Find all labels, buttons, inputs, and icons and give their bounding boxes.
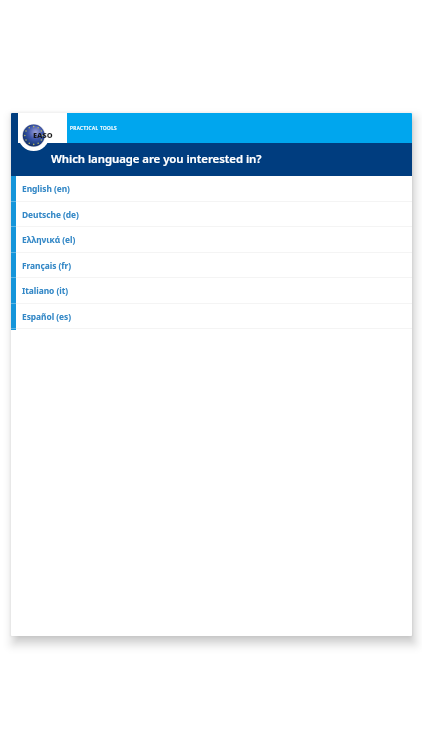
button[interactable]: Ελληνικά (el) bbox=[11, 227, 412, 253]
staticText: Español (es) bbox=[22, 311, 71, 322]
button[interactable]: English (en) bbox=[11, 176, 412, 202]
staticText: Italiano (it) bbox=[22, 285, 69, 296]
button[interactable]: Italiano (it) bbox=[11, 278, 412, 304]
staticText: Which language are you interested in? bbox=[51, 151, 262, 167]
staticText: EASO bbox=[33, 130, 53, 140]
button[interactable]: Français (fr) bbox=[11, 253, 412, 279]
staticText: PRACTICAL TOOLS bbox=[70, 125, 118, 131]
staticText: Deutsche (de) bbox=[22, 209, 79, 220]
staticText: Ελληνικά (el) bbox=[22, 234, 76, 245]
staticText: English (en) bbox=[22, 183, 70, 194]
staticText: Français (fr) bbox=[22, 260, 71, 271]
button[interactable]: Deutsche (de) bbox=[11, 202, 412, 228]
button[interactable]: Español (es) bbox=[11, 304, 412, 330]
